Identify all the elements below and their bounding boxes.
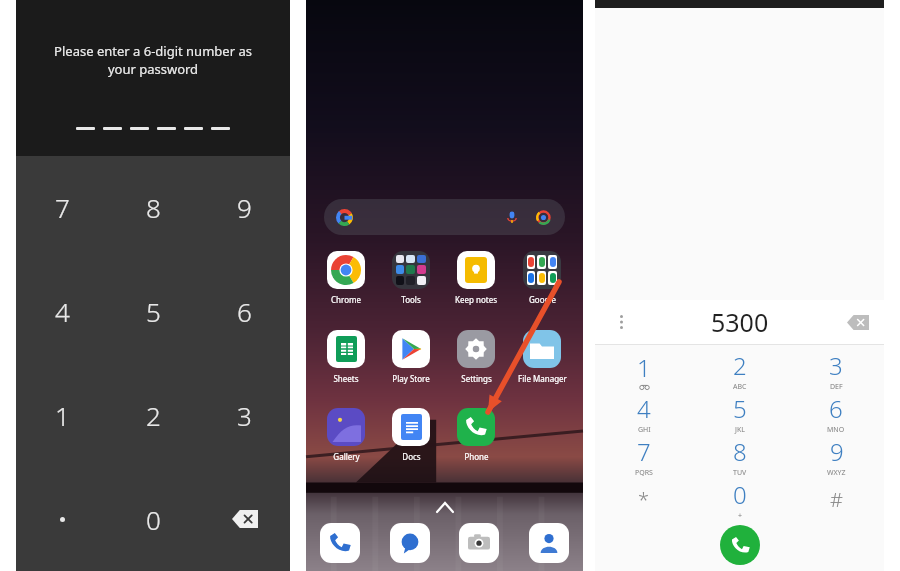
- button[interactable]: Settings: [447, 329, 505, 384]
- staticText: 4: [55, 294, 70, 329]
- button[interactable]: 5: [692, 392, 788, 435]
- button[interactable]: 5: [108, 259, 199, 363]
- other: Google Lens: [536, 210, 551, 225]
- button[interactable]: 1: [16, 363, 108, 467]
- staticText: 5: [733, 392, 747, 425]
- staticText: 9: [237, 190, 252, 225]
- staticText: 2: [733, 349, 747, 382]
- button[interactable]: Delete: [199, 467, 290, 571]
- staticText: 0: [146, 502, 161, 537]
- staticText: 8: [733, 435, 747, 468]
- staticText: 3: [829, 349, 843, 382]
- staticText: Please enter a 6-digit number as your pa…: [42, 42, 264, 78]
- staticText: 0: [733, 478, 747, 511]
- staticText: 5300: [711, 305, 769, 339]
- staticText: Tools: [401, 294, 421, 305]
- staticText: Gallery: [333, 451, 360, 462]
- button[interactable]: Camera: [459, 523, 499, 563]
- staticText: 6: [829, 392, 843, 425]
- staticText: 8: [146, 190, 161, 225]
- button[interactable]: Call: [720, 525, 760, 565]
- staticText: Keep notes: [455, 294, 497, 305]
- staticText: MNO: [827, 425, 845, 435]
- button[interactable]: 3: [788, 349, 884, 392]
- staticText: 2: [146, 398, 161, 433]
- staticText: 3: [237, 398, 252, 433]
- staticText: Docs: [402, 451, 421, 462]
- other: Voice search: [505, 210, 519, 224]
- button[interactable]: 8: [108, 156, 199, 259]
- button[interactable]: 0: [692, 478, 788, 521]
- button[interactable]: More options: [609, 310, 633, 334]
- staticText: 4: [637, 392, 651, 425]
- staticText: ABC: [733, 382, 747, 392]
- button[interactable]: 6: [788, 392, 884, 435]
- button[interactable]: 2: [108, 363, 199, 467]
- staticText: Play Store: [392, 373, 430, 384]
- button[interactable]: Tools: [382, 250, 440, 305]
- button[interactable]: Contacts: [529, 523, 569, 563]
- button[interactable]: 0: [108, 467, 199, 571]
- staticText: 6: [237, 294, 252, 329]
- button[interactable]: File Manager: [513, 329, 571, 384]
- staticText: Google: [529, 294, 556, 305]
- staticText: Sheets: [333, 373, 359, 384]
- button[interactable]: Messages: [390, 523, 430, 563]
- other: Delete: [225, 499, 265, 539]
- staticText: Settings: [461, 373, 492, 384]
- button[interactable]: 1: [595, 349, 692, 392]
- staticText: 7: [637, 435, 651, 468]
- staticText: WXYZ: [827, 468, 846, 478]
- button[interactable]: Gallery: [317, 407, 375, 462]
- button[interactable]: 3: [199, 363, 290, 467]
- staticText: 5: [146, 294, 161, 329]
- button[interactable]: 6: [199, 259, 290, 363]
- staticText: #: [830, 486, 843, 513]
- staticText: *: [638, 486, 650, 513]
- button[interactable]: 4: [16, 259, 108, 363]
- button[interactable]: *: [595, 478, 692, 521]
- staticText: GHI: [638, 425, 651, 435]
- staticText: 1: [55, 398, 70, 433]
- button[interactable]: 7: [16, 156, 108, 259]
- button[interactable]: Backspace: [844, 308, 872, 336]
- button[interactable]: 2: [692, 349, 788, 392]
- button[interactable]: Voice search: [324, 199, 565, 235]
- staticText: +: [738, 511, 743, 521]
- button[interactable]: Phone: [320, 523, 360, 563]
- button[interactable]: Google: [513, 250, 571, 305]
- button[interactable]: Chrome: [317, 250, 375, 305]
- button[interactable]: Sheets: [317, 329, 375, 384]
- button[interactable]: 9: [199, 156, 290, 259]
- button[interactable]: 8: [692, 435, 788, 478]
- staticText: 7: [55, 190, 70, 225]
- staticText: DEF: [830, 382, 843, 392]
- button[interactable]: 7: [595, 435, 692, 478]
- button[interactable]: #: [788, 478, 884, 521]
- button[interactable]: 4: [595, 392, 692, 435]
- button[interactable]: Docs: [382, 407, 440, 462]
- button[interactable]: Play Store: [382, 329, 440, 384]
- button[interactable]: 9: [788, 435, 884, 478]
- staticText: 1: [637, 351, 651, 384]
- button[interactable]: Keep notes: [447, 250, 505, 305]
- staticText: TUV: [733, 468, 747, 478]
- button[interactable]: [16, 467, 108, 571]
- staticText: PQRS: [635, 468, 653, 478]
- staticText: JKL: [735, 425, 745, 435]
- staticText: File Manager: [518, 373, 567, 384]
- staticText: Chrome: [331, 294, 361, 305]
- staticText: Phone: [464, 451, 489, 462]
- button[interactable]: Phone: [447, 407, 505, 462]
- staticText: 9: [830, 435, 844, 468]
